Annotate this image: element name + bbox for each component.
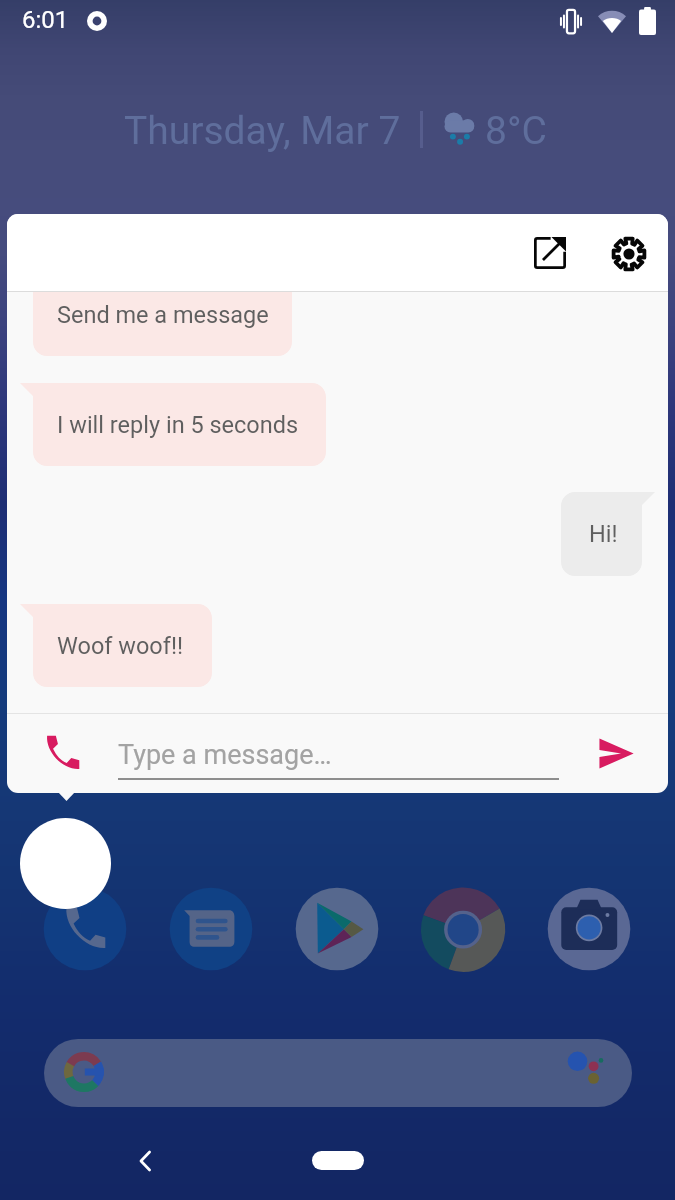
button[interactable]: Chat bubble avatar — [20, 818, 111, 909]
button[interactable]: Woof woof!! — [20, 604, 212, 687]
staticText: Type a message… — [118, 739, 332, 771]
button[interactable]: Settings — [611, 236, 647, 272]
button[interactable]: Back — [128, 1143, 164, 1179]
button[interactable]: Open in new window — [534, 237, 566, 269]
button[interactable]: Hi! — [561, 492, 655, 576]
button[interactable]: Home — [312, 1151, 364, 1170]
staticText: Hi! — [589, 520, 618, 548]
staticText: 8°C — [485, 108, 547, 154]
button[interactable]: Search — [44, 1039, 632, 1107]
button[interactable]: Chrome — [418, 884, 508, 974]
button[interactable]: Call — [45, 735, 80, 770]
staticText: Woof woof!! — [57, 632, 184, 660]
staticText: Send me a message — [57, 301, 269, 329]
button[interactable]: I will reply in 5 seconds — [20, 383, 326, 466]
button[interactable]: Send — [598, 738, 634, 769]
staticText: I will reply in 5 seconds — [57, 411, 299, 439]
button[interactable]: Phone — [40, 884, 130, 974]
button[interactable]: Send me a message — [20, 292, 292, 356]
staticText: 6:01 — [22, 6, 69, 34]
button[interactable]: Play Store — [292, 884, 382, 974]
staticText: Thursday, Mar 7 — [124, 108, 401, 154]
button[interactable]: Camera — [544, 884, 634, 974]
button[interactable]: Messages — [166, 884, 256, 974]
